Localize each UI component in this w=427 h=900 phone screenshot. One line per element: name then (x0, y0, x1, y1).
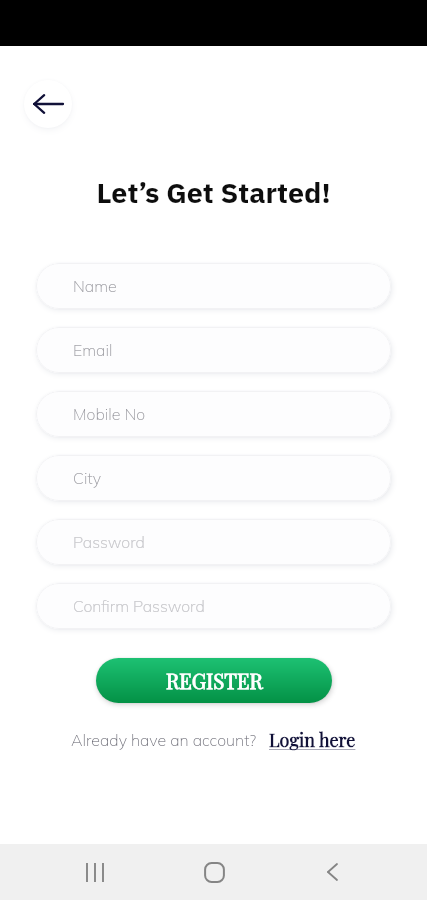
staticText: Name (73, 276, 117, 296)
button[interactable]: Back (24, 80, 72, 128)
staticText: Mobile No (73, 404, 146, 424)
button[interactable]: REGISTER (96, 658, 332, 703)
staticText: Already have an account? (71, 730, 269, 750)
staticText: City (73, 468, 102, 488)
button[interactable]: Back (308, 848, 356, 896)
button[interactable]: City (36, 455, 391, 501)
staticText: Password (73, 532, 145, 552)
button[interactable]: Confirm Password (36, 583, 391, 629)
button[interactable]: Name (36, 263, 391, 309)
staticText: Login here (269, 728, 356, 752)
staticText: Let’s Get Started! (0, 172, 427, 215)
button[interactable]: Mobile No (36, 391, 391, 437)
button[interactable]: Home (190, 848, 238, 896)
button[interactable]: Email (36, 327, 391, 373)
staticText: Email (73, 340, 113, 360)
button[interactable]: Password (36, 519, 391, 565)
staticText: REGISTER (166, 667, 263, 694)
button[interactable]: Recent apps (71, 848, 119, 896)
button[interactable]: Login here (269, 728, 356, 752)
staticText: Confirm Password (73, 596, 205, 616)
